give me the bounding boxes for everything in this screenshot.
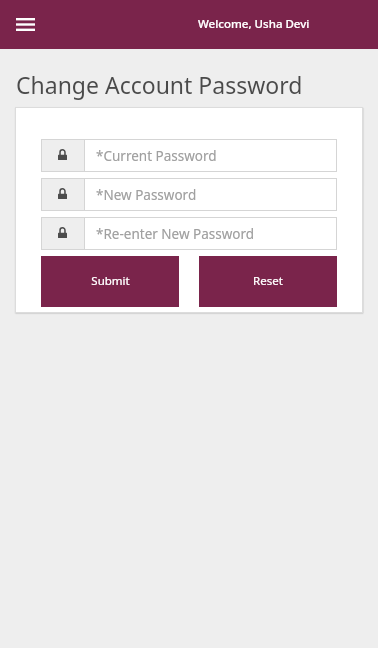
button[interactable]: Open navigation menu [8, 8, 42, 42]
button[interactable]: Reset [199, 256, 337, 307]
button[interactable]: *New Password [41, 178, 337, 211]
staticText: *New Password [96, 186, 197, 204]
staticText: Change Account Password [16, 69, 303, 100]
staticText: Welcome, Usha Devi [198, 16, 310, 32]
button[interactable]: *Current Password [41, 139, 337, 172]
button[interactable]: *Re-enter New Password [41, 217, 337, 250]
staticText: Submit [91, 273, 130, 289]
staticText: *Current Password [96, 147, 217, 165]
button[interactable]: Submit [41, 256, 179, 307]
staticText: *Re-enter New Password [96, 225, 255, 243]
staticText: Reset [253, 273, 283, 289]
